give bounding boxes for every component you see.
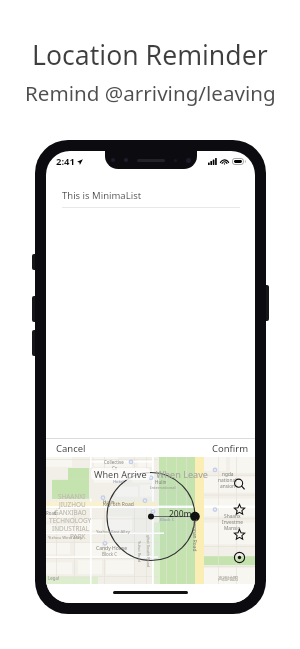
staticText: national (218, 477, 237, 484)
staticText: Yuhui Road (137, 541, 142, 563)
button[interactable]: Search (232, 477, 247, 492)
button[interactable]: When Arrive (91, 468, 150, 480)
staticText: 200m (169, 508, 192, 520)
staticText: When Arrive (94, 468, 147, 480)
staticText: ngda (222, 471, 234, 478)
staticText: Block C (160, 517, 175, 523)
staticText: International (150, 485, 176, 491)
staticText: Investme (222, 519, 243, 526)
staticText: ghai South Road (145, 535, 151, 568)
staticText: Shaanx (224, 513, 241, 520)
staticText: Collective (104, 459, 124, 465)
staticText: When Leave (156, 468, 208, 480)
button[interactable]: My location (232, 550, 247, 565)
staticText: Confirm (212, 442, 249, 455)
staticText: Cancel (56, 442, 86, 455)
staticText: Hulin (155, 479, 167, 485)
staticText: Yizhou West Alley (48, 535, 83, 541)
button[interactable]: Favorite (232, 502, 247, 517)
staticText: Road (46, 510, 57, 516)
button[interactable]: Confirm (204, 440, 255, 457)
button[interactable]: Cancel (46, 440, 94, 457)
staticText: Candy House (96, 545, 128, 552)
button[interactable]: When Leave (153, 468, 211, 480)
staticText: 高德地图 (218, 575, 238, 581)
staticText: Legal (48, 575, 60, 581)
staticText: JIUZHOU (59, 500, 86, 509)
staticText: Hotel (113, 479, 124, 485)
staticText: SHAANXI (58, 492, 86, 501)
staticText: TECHNOLOGY (49, 516, 92, 525)
staticText: Mansio (224, 525, 241, 532)
staticText: PARK (70, 532, 86, 541)
staticText: Remind @arriving/leaving (25, 79, 276, 107)
staticText: Yazhou East Alley (96, 529, 130, 535)
staticText: Tengnan Road (191, 519, 198, 552)
staticText: INDUSTRIAL (52, 524, 89, 533)
staticText: This is MinimaList (62, 189, 142, 202)
staticText: Location Reminder (32, 37, 268, 73)
staticText: Keji 6th Road (103, 501, 134, 508)
button[interactable]: Favorite (232, 527, 247, 542)
staticText: Ce (112, 465, 118, 471)
staticText: 2:41 (56, 155, 75, 168)
staticText: ansion (220, 483, 236, 490)
staticText: Block C (102, 551, 118, 557)
staticText: GANXIBAO (54, 508, 87, 517)
staticText: Hujin (103, 499, 115, 505)
